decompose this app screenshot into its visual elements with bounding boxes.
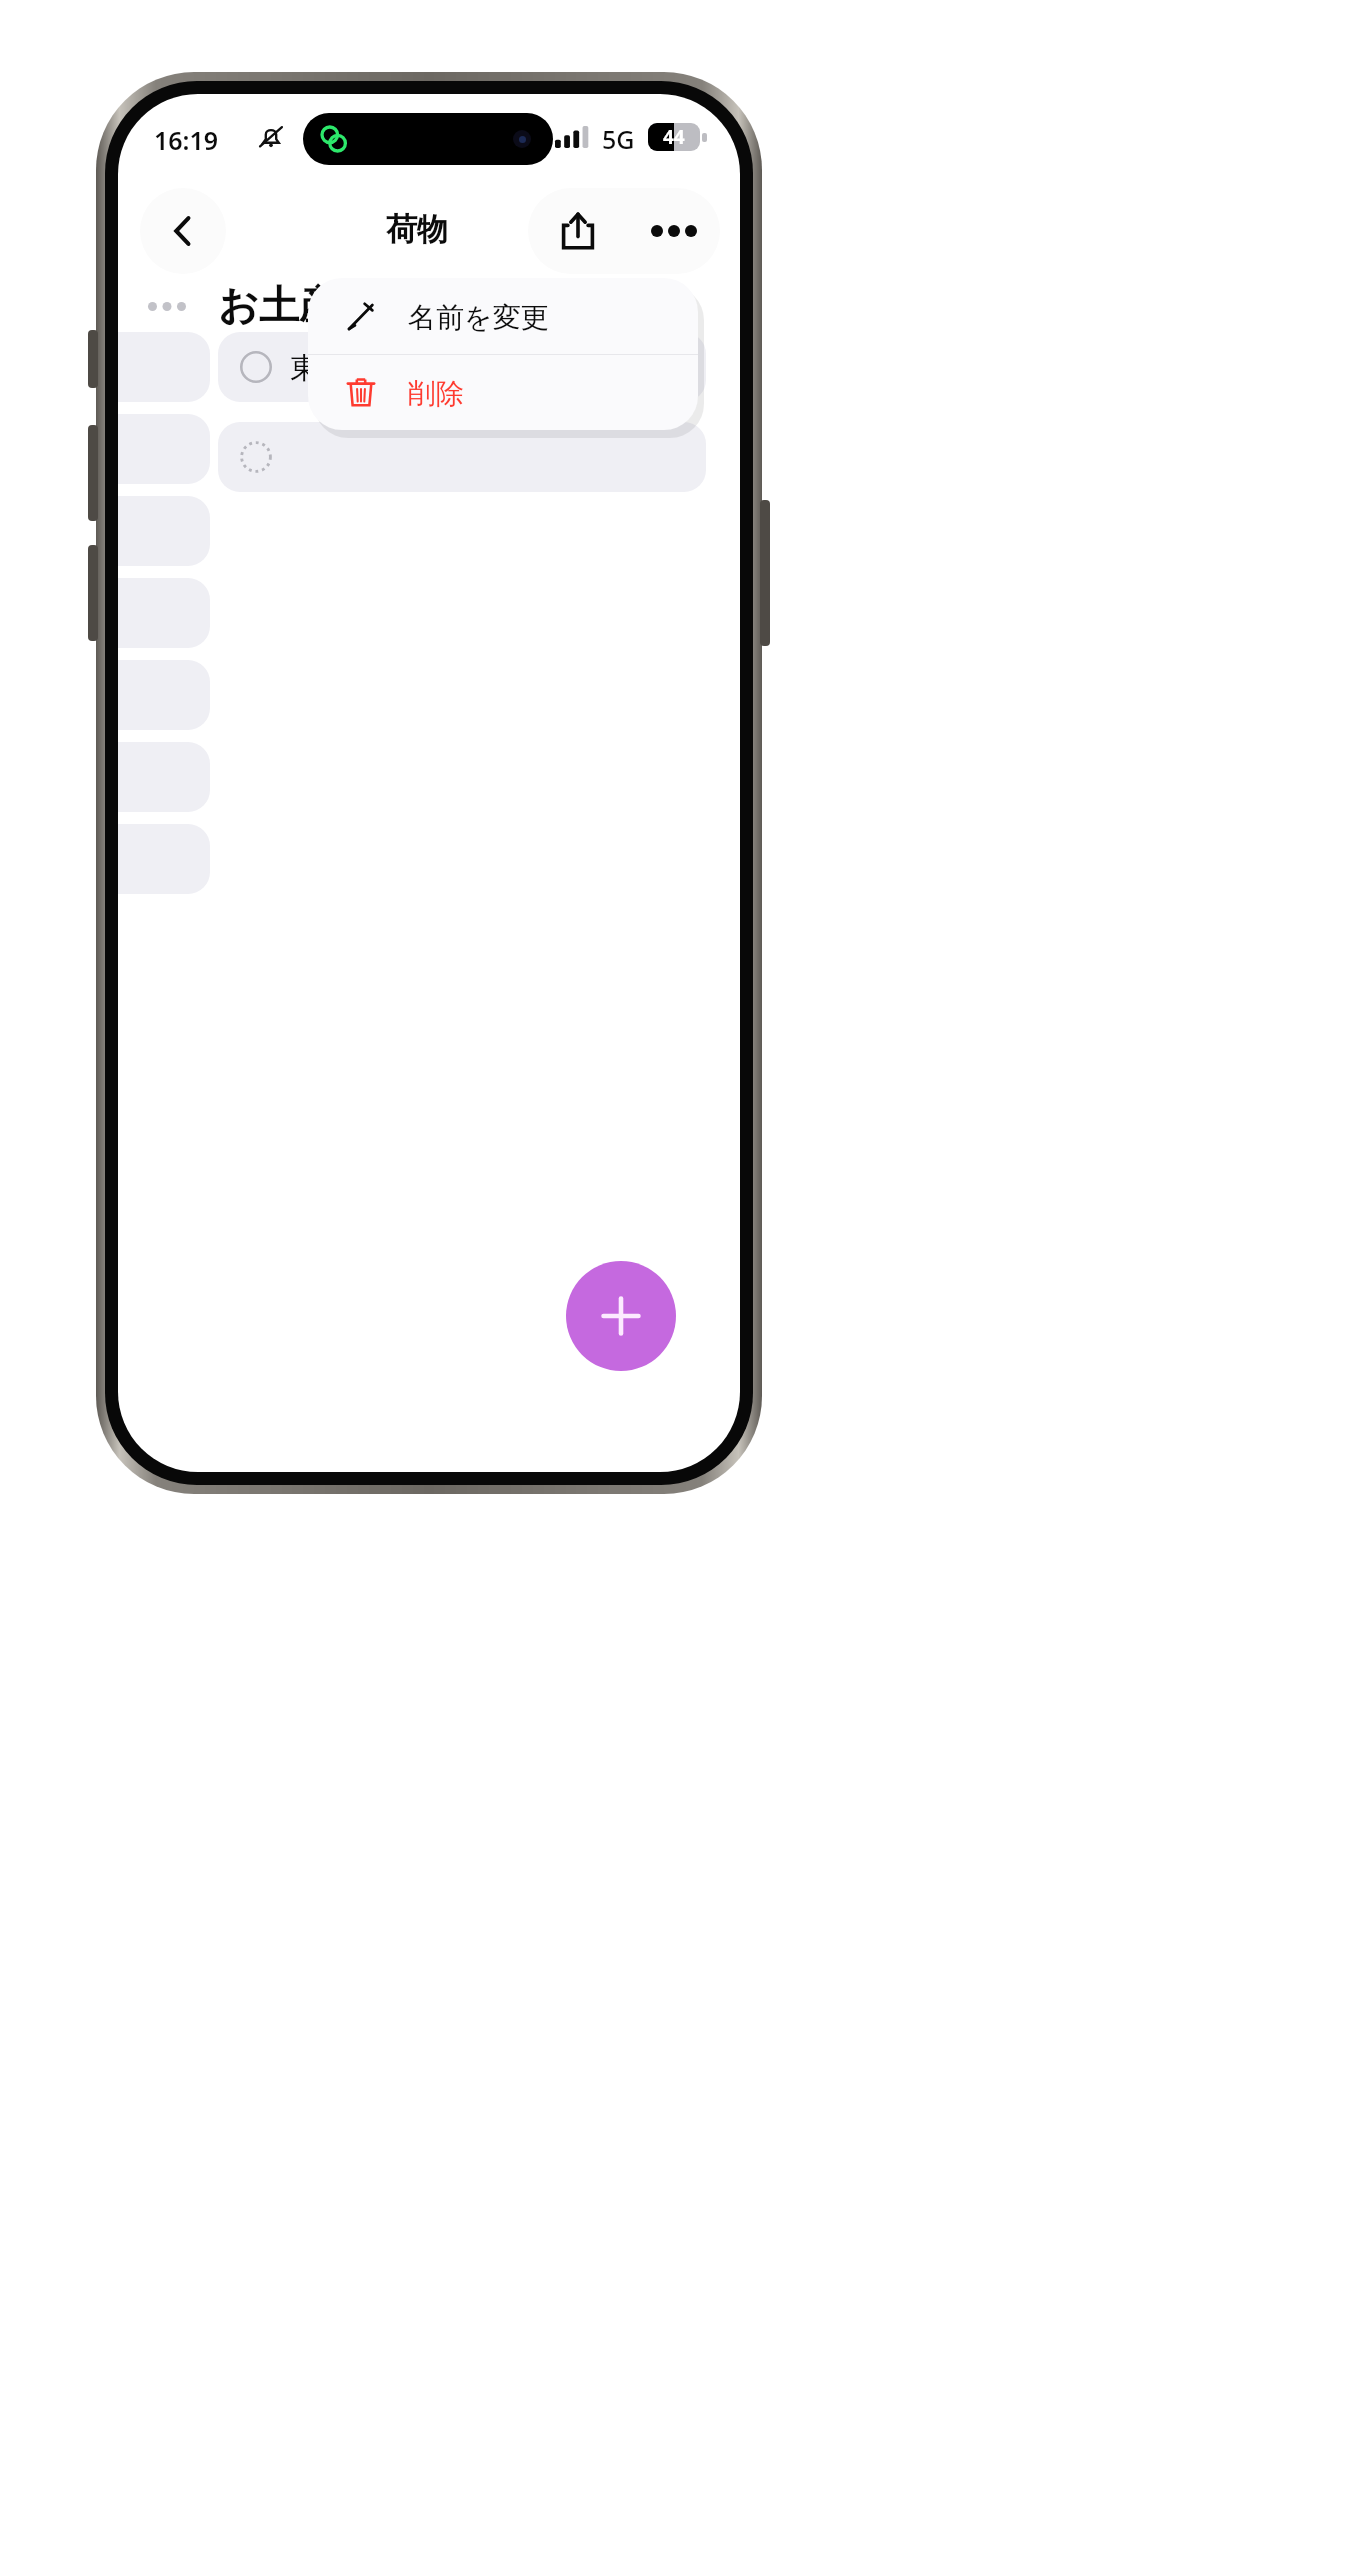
staticText: 東京 <box>290 350 348 387</box>
button[interactable]: 削除 <box>308 355 698 430</box>
button[interactable]: Share <box>532 188 624 274</box>
staticText: お土産 <box>218 280 339 330</box>
staticText: 5G <box>602 122 635 156</box>
button[interactable]: More options <box>628 188 720 274</box>
button[interactable] <box>218 422 706 492</box>
staticText: 16:19 <box>154 123 219 157</box>
button[interactable]: Add <box>566 1261 676 1371</box>
staticText: 削除 <box>408 376 464 411</box>
staticText: 荷物 <box>386 210 448 249</box>
button[interactable]: 東京 <box>218 332 706 402</box>
staticText: 名前を変更 <box>408 300 549 335</box>
button[interactable]: 名前を変更 <box>308 278 698 354</box>
button[interactable]: Back <box>140 188 226 274</box>
staticText: 44 <box>663 124 685 150</box>
